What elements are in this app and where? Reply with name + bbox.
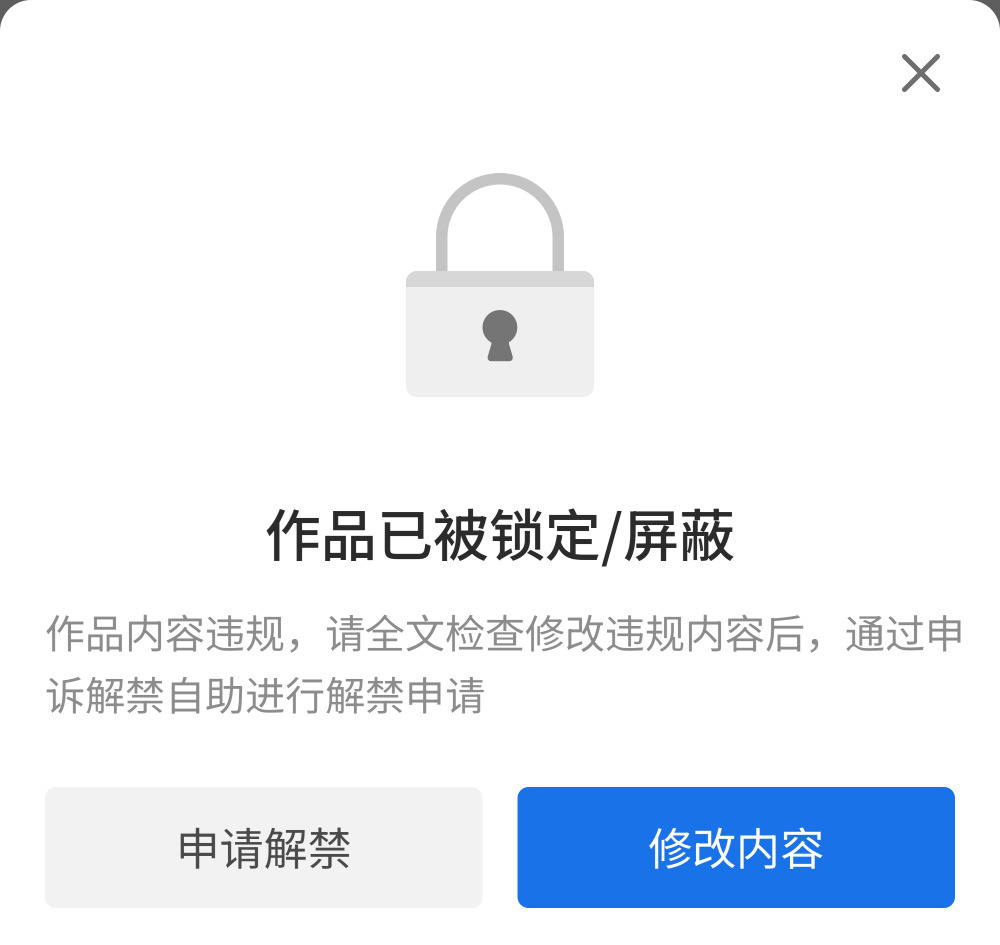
staticText: 申请解禁	[176, 814, 352, 877]
staticText: 作品已被锁定/屏蔽	[265, 491, 735, 572]
staticText: 作品内容违规，请全文检查修改违规内容后，通过申诉解禁自助进行解禁申请	[45, 602, 965, 722]
button[interactable]: Close	[882, 34, 960, 112]
staticText: 修改内容	[648, 814, 824, 877]
button[interactable]: 申请解禁	[45, 787, 482, 908]
button[interactable]: 修改内容	[517, 787, 955, 908]
